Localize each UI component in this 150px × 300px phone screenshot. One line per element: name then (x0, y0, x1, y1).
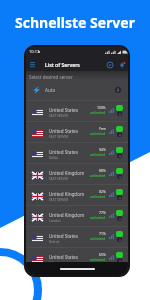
staticText: unlimited (90, 194, 106, 199)
button[interactable]: United States (26, 248, 128, 268)
button[interactable]: Info (117, 216, 122, 221)
staticText: unlimited (90, 131, 106, 136)
button[interactable]: United States (26, 227, 128, 247)
button[interactable]: Info (117, 111, 122, 116)
button[interactable]: Info (117, 174, 122, 179)
button[interactable]: Auto (26, 80, 128, 100)
staticText: United States (49, 233, 78, 239)
staticText: FAST SERVER (49, 135, 69, 139)
button[interactable]: Connect (116, 105, 123, 111)
button[interactable]: Notifications (117, 60, 126, 69)
staticText: 88% (99, 168, 106, 173)
staticText: 71% (99, 231, 106, 236)
staticText: unlimited (90, 152, 106, 157)
staticText: Free (99, 126, 106, 131)
staticText: United States (49, 254, 78, 260)
button[interactable]: Info (117, 132, 122, 137)
staticText: List of Servers (45, 61, 80, 68)
staticText: unlimited (90, 236, 106, 241)
staticText: unlimited (90, 173, 106, 178)
staticText: Detroit (49, 240, 60, 244)
staticText: unlimited (90, 215, 106, 220)
staticText: unlimited (90, 110, 106, 115)
staticText: FAST SERVER (49, 114, 69, 118)
button[interactable]: United States (26, 143, 128, 163)
button[interactable]: Info (113, 85, 123, 95)
button[interactable]: Connect (116, 189, 123, 195)
button[interactable]: Info (117, 258, 122, 263)
button[interactable]: Connect (116, 210, 123, 216)
staticText: unlimited (90, 257, 106, 262)
button[interactable]: Compass (105, 60, 114, 69)
staticText: London (49, 219, 61, 223)
staticText: 77% (99, 210, 106, 215)
staticText: United States (49, 128, 78, 134)
staticText: Atlanta (49, 261, 60, 265)
staticText: United Kingdom (49, 191, 85, 197)
staticText: United States (49, 149, 78, 155)
button[interactable]: United Kingdom (26, 185, 128, 205)
staticText: United Kingdom (49, 212, 85, 218)
staticText: 100% (97, 105, 106, 110)
button[interactable]: United States (26, 101, 128, 121)
button[interactable]: Connect (116, 252, 123, 258)
button[interactable]: Connect (116, 168, 123, 174)
button[interactable]: United States (26, 122, 128, 142)
staticText: FAST SERVER (49, 198, 69, 202)
button[interactable]: Info (117, 195, 122, 200)
staticText: 82% (99, 189, 106, 194)
button[interactable]: Connect (116, 126, 123, 132)
button[interactable]: Connect (116, 147, 123, 153)
staticText: 10:17 (29, 49, 40, 54)
button[interactable]: Info (117, 153, 122, 158)
button[interactable]: United Kingdom (26, 206, 128, 226)
button[interactable]: Info (117, 237, 122, 242)
button[interactable]: Menu (28, 60, 36, 68)
staticText: Schnellste Server (0, 13, 150, 32)
staticText: 65% (99, 252, 106, 257)
button[interactable]: Connect (116, 231, 123, 237)
staticText: Select desired server (29, 74, 73, 80)
staticText: FAST SERVER (49, 177, 69, 181)
staticText: 94% (99, 147, 106, 152)
staticText: United Kingdom (49, 170, 85, 176)
button[interactable]: United Kingdom (26, 164, 128, 184)
staticText: Auto (45, 87, 56, 93)
staticText: Dallas (49, 156, 59, 160)
staticText: United States (49, 107, 78, 113)
